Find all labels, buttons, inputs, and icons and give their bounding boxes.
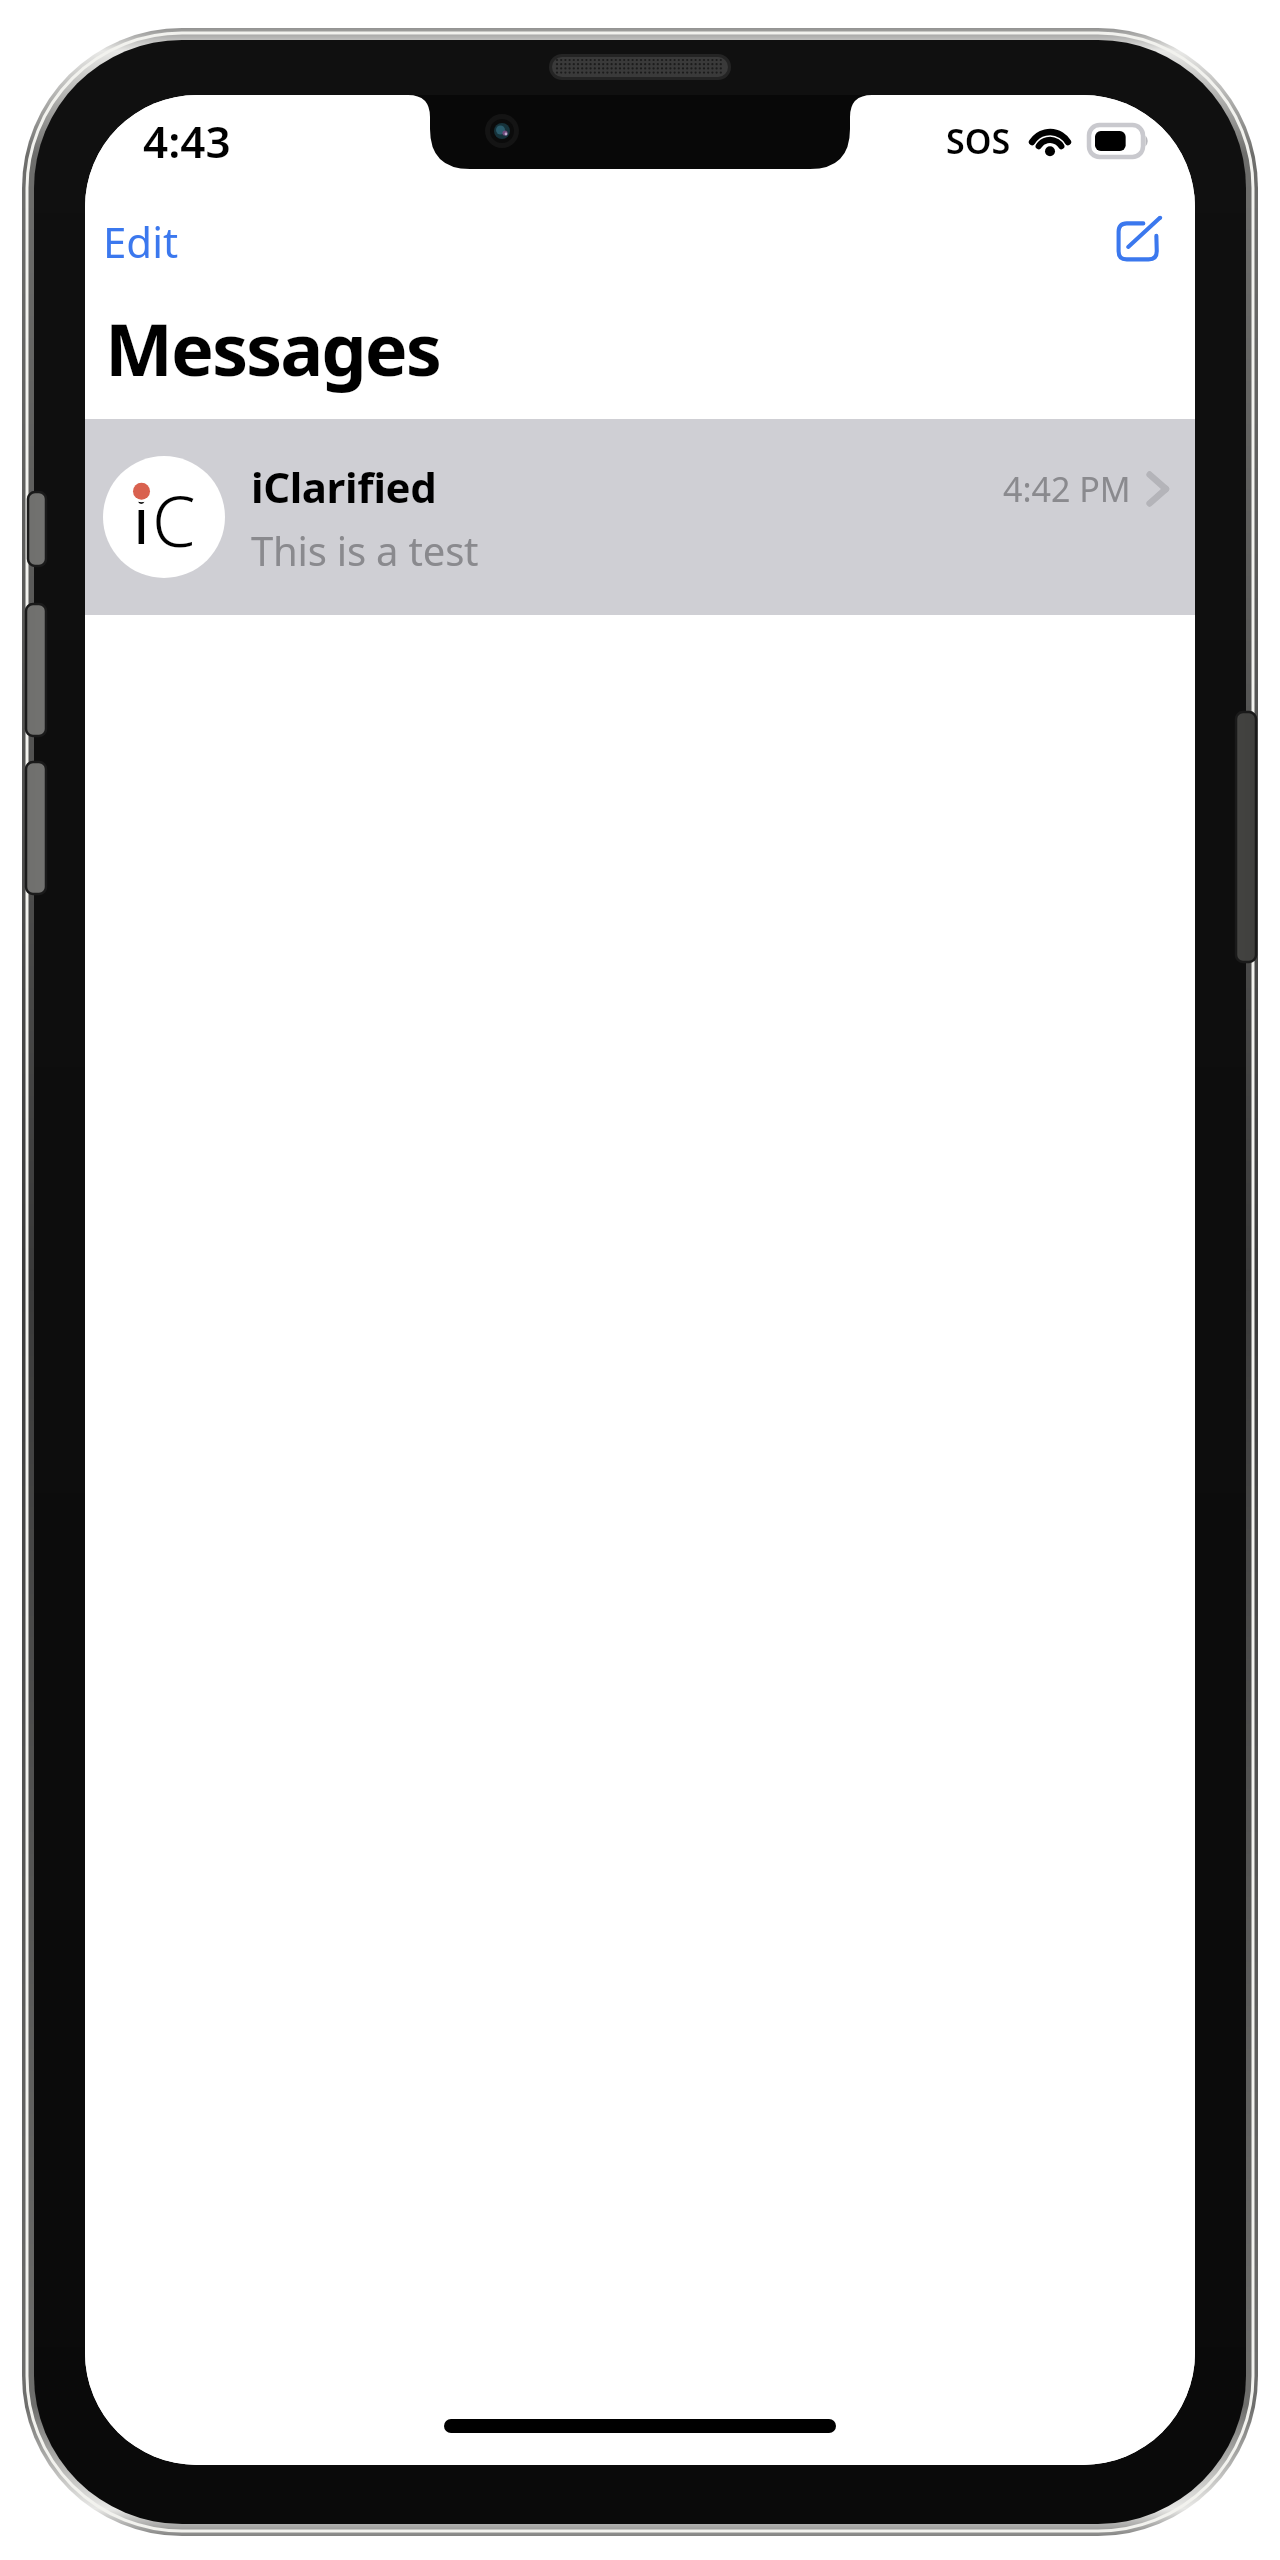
button[interactable]: Edit: [89, 207, 193, 271]
staticText: iClarified: [251, 458, 437, 515]
staticText: C: [152, 472, 196, 567]
staticText: 4:42 PM: [1003, 466, 1131, 512]
staticText: Edit: [103, 213, 179, 265]
staticText: SOS: [946, 118, 1011, 164]
staticText: 4:43: [143, 111, 231, 171]
staticText: Messages: [105, 299, 440, 397]
button[interactable]: Compose new message: [1107, 207, 1175, 271]
staticText: i: [133, 476, 150, 563]
button[interactable]: i: [85, 419, 1195, 615]
staticText: This is a test: [251, 523, 479, 577]
